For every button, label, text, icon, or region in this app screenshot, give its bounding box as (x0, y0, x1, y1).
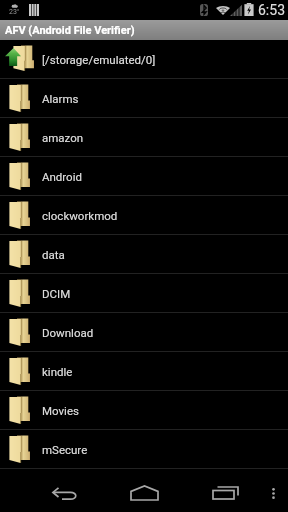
button[interactable]: Recent apps (203, 475, 247, 507)
button[interactable]: mSecure (0, 430, 288, 468)
staticText: [/storage/emulated/0] (42, 53, 156, 66)
button[interactable]: data (0, 235, 288, 273)
staticText: DCIM (42, 287, 71, 300)
button[interactable]: Android (0, 157, 288, 195)
button[interactable]: Back (40, 475, 88, 507)
button[interactable]: Alarms (0, 79, 288, 117)
staticText: 6:53 (258, 2, 285, 18)
staticText: 23° (9, 8, 20, 16)
button[interactable]: Home (120, 475, 168, 507)
staticText: Alarms (42, 92, 79, 105)
button[interactable]: Download (0, 313, 288, 351)
staticText: AFV (Android File Verifier) (5, 24, 135, 37)
staticText: Movies (42, 404, 79, 417)
button[interactable]: DCIM (0, 274, 288, 312)
staticText: Download (42, 326, 94, 339)
button[interactable]: clockworkmod (0, 196, 288, 234)
staticText: data (42, 248, 65, 261)
button[interactable]: AFV (Android File Verifier) (0, 20, 288, 40)
staticText: clockworkmod (42, 209, 118, 222)
staticText: kindle (42, 365, 73, 378)
button[interactable]: More options (262, 475, 284, 507)
staticText: Android (42, 170, 82, 183)
staticText: amazon (42, 131, 84, 144)
staticText: mSecure (42, 443, 88, 456)
button[interactable]: kindle (0, 352, 288, 390)
button[interactable]: Movies (0, 391, 288, 429)
button[interactable]: amazon (0, 118, 288, 156)
button[interactable]: [/storage/emulated/0] (0, 40, 288, 78)
